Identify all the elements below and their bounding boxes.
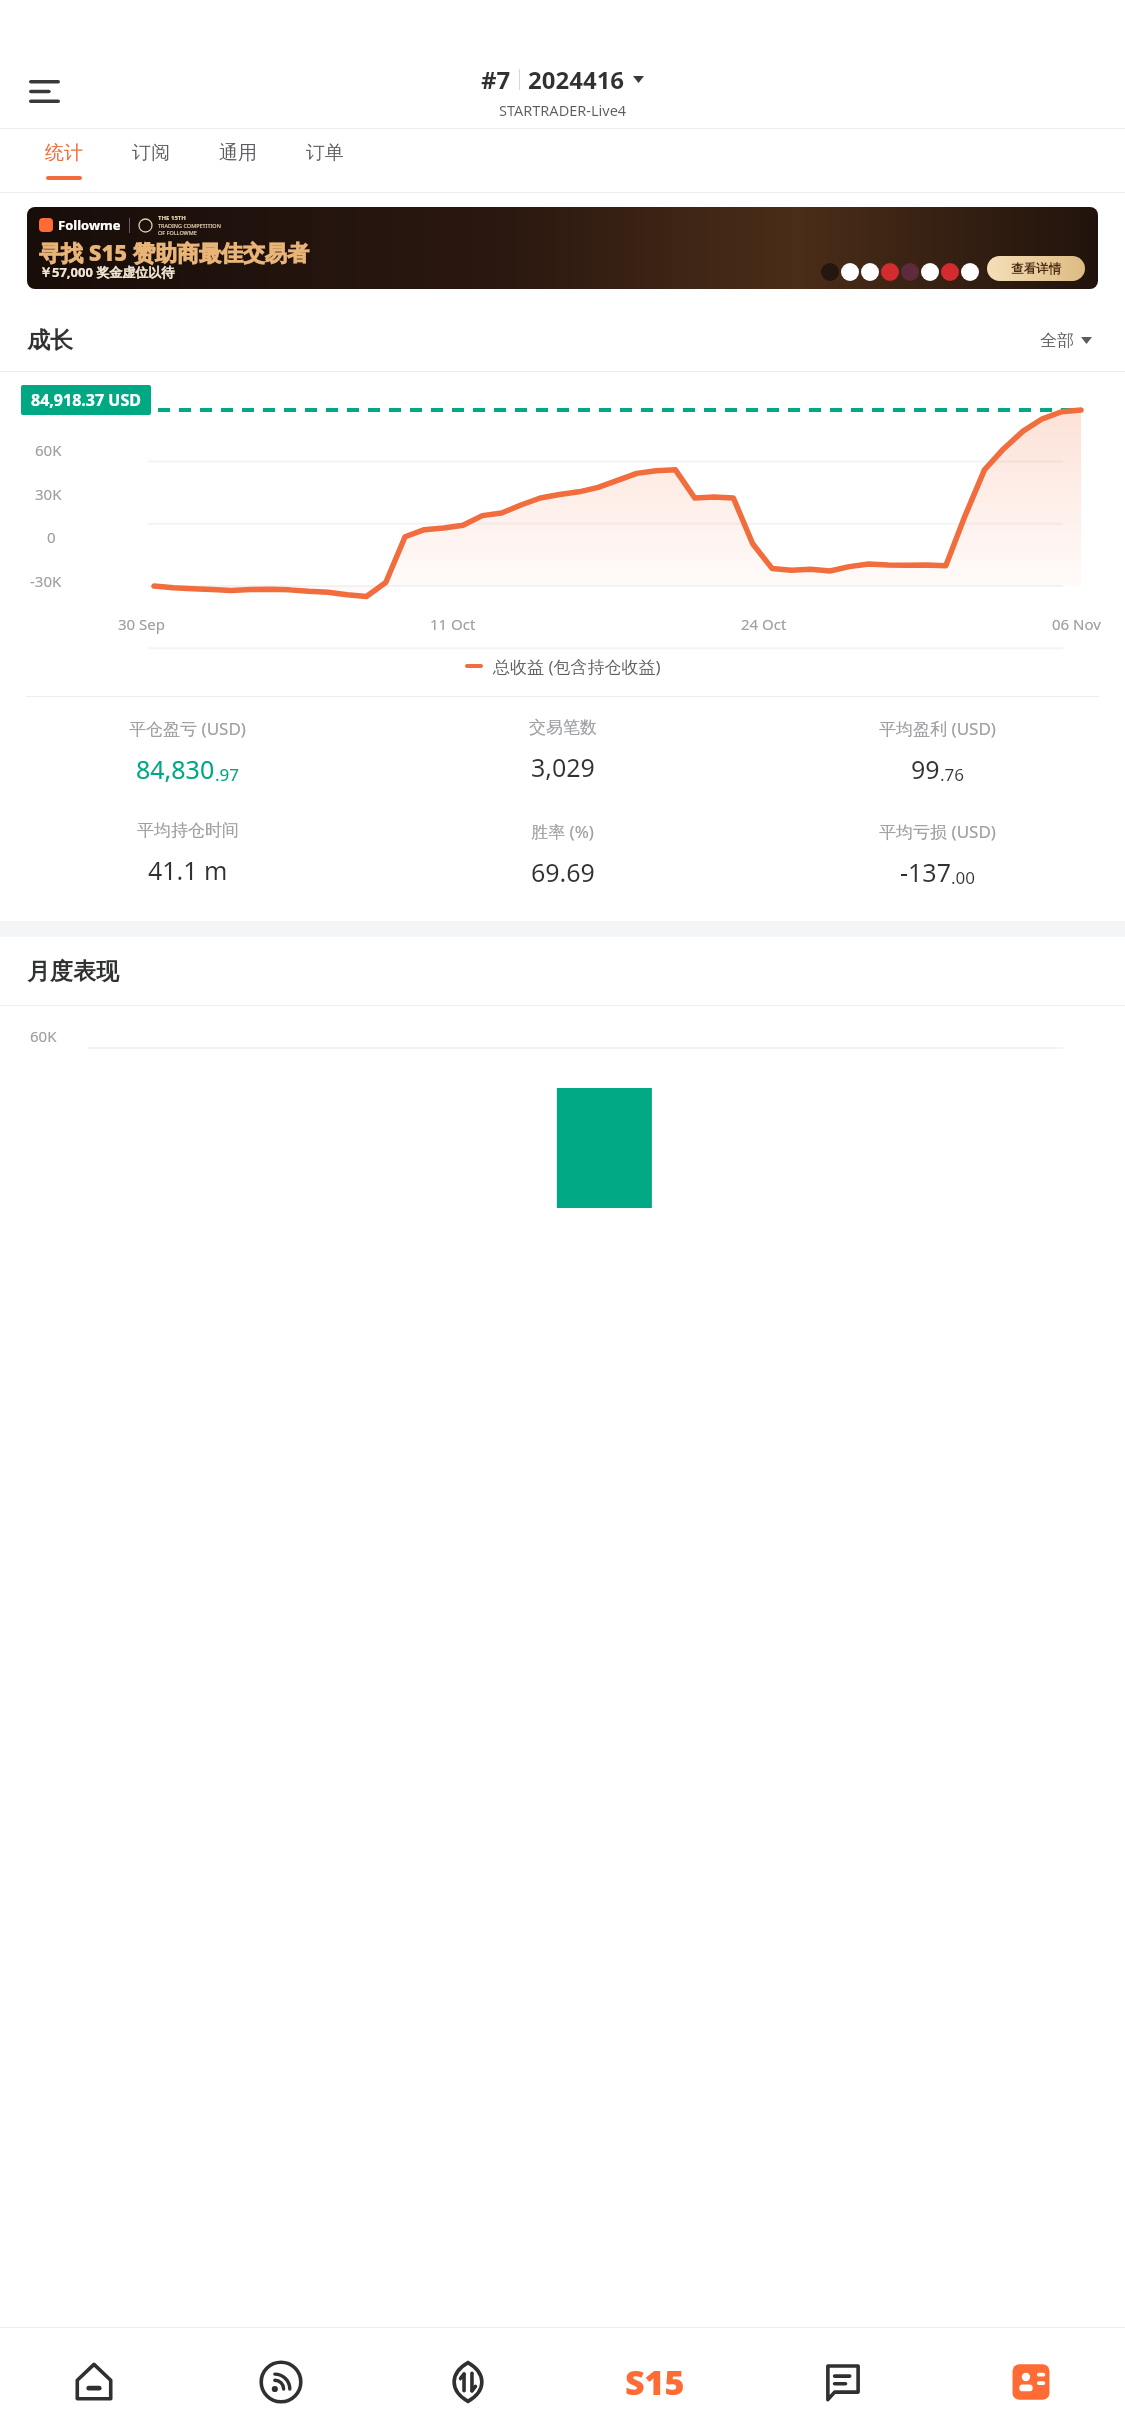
staticText: 全部 — [1040, 330, 1074, 351]
button[interactable]: 通用 — [194, 129, 281, 192]
staticText: #7 — [481, 63, 511, 96]
button[interactable]: 全部 — [1034, 324, 1098, 357]
staticText: 69.69 — [531, 855, 595, 889]
staticText: 通用 — [219, 141, 257, 165]
staticText: 0 — [47, 527, 56, 547]
button[interactable]: Trade — [374, 2328, 561, 2436]
staticText: 胜率 (%) — [531, 820, 594, 843]
staticText: 30 Sep — [118, 614, 165, 634]
staticText: TRADING COMPETITION — [158, 222, 221, 229]
staticText: 查看详情 — [1011, 261, 1061, 277]
staticText: 交易笔数 — [529, 717, 597, 738]
button[interactable]: 订阅 — [107, 129, 194, 192]
staticText: 月度表现 — [27, 957, 119, 986]
staticText: 99 — [911, 752, 940, 786]
staticText: .00 — [951, 866, 976, 889]
staticText: 总收益 (包含持仓收益) — [493, 655, 661, 678]
staticText: 订单 — [306, 141, 344, 165]
staticText: OF FOLLOWME — [158, 229, 197, 236]
staticText: Followme — [58, 216, 121, 234]
staticText: ￥57,000 奖金虚位以待 — [39, 263, 175, 281]
button[interactable]: Followme — [27, 207, 1098, 289]
staticText: STARTRADER-Live4 — [499, 100, 627, 120]
staticText: 11 Oct — [430, 614, 476, 634]
staticText: 平均盈利 (USD) — [879, 717, 996, 740]
staticText: 成长 — [27, 326, 73, 355]
staticText: 84,918.37 USD — [31, 389, 141, 411]
staticText: 60K — [35, 440, 62, 460]
button[interactable]: Home — [0, 2328, 187, 2436]
button[interactable]: Signals — [187, 2328, 374, 2436]
staticText: 84,830 — [136, 752, 215, 786]
button[interactable]: 统计 — [20, 129, 107, 192]
staticText: THE 15TH — [158, 214, 186, 222]
staticText: 平均亏损 (USD) — [879, 820, 996, 843]
button[interactable]: 订单 — [281, 129, 368, 192]
staticText: .97 — [215, 763, 240, 786]
staticText: 41.1 m — [148, 853, 228, 887]
staticText: .76 — [940, 763, 965, 786]
staticText: 24 Oct — [741, 614, 787, 634]
button[interactable]: 查看详情 — [987, 256, 1085, 281]
button[interactable]: S15 — [561, 2328, 749, 2436]
button[interactable]: Messages — [749, 2328, 937, 2436]
staticText: -30K — [30, 571, 62, 591]
staticText: 平仓盈亏 (USD) — [129, 717, 246, 740]
staticText: 寻找 S15 赞助商最佳交易者 — [39, 237, 309, 267]
staticText: 60K — [30, 1026, 57, 1046]
staticText: 2024416 — [528, 63, 625, 96]
staticText: 平均持仓时间 — [137, 820, 239, 841]
staticText: S15 — [625, 2359, 685, 2405]
staticText: 订阅 — [132, 141, 170, 165]
button[interactable]: Profile — [937, 2328, 1125, 2436]
staticText: 06 Nov — [1052, 614, 1101, 634]
staticText: 统计 — [45, 141, 83, 165]
button[interactable]: Menu — [16, 63, 72, 119]
staticText: 3,029 — [531, 750, 595, 784]
staticText: -137 — [900, 855, 951, 889]
staticText: 30K — [35, 484, 62, 504]
